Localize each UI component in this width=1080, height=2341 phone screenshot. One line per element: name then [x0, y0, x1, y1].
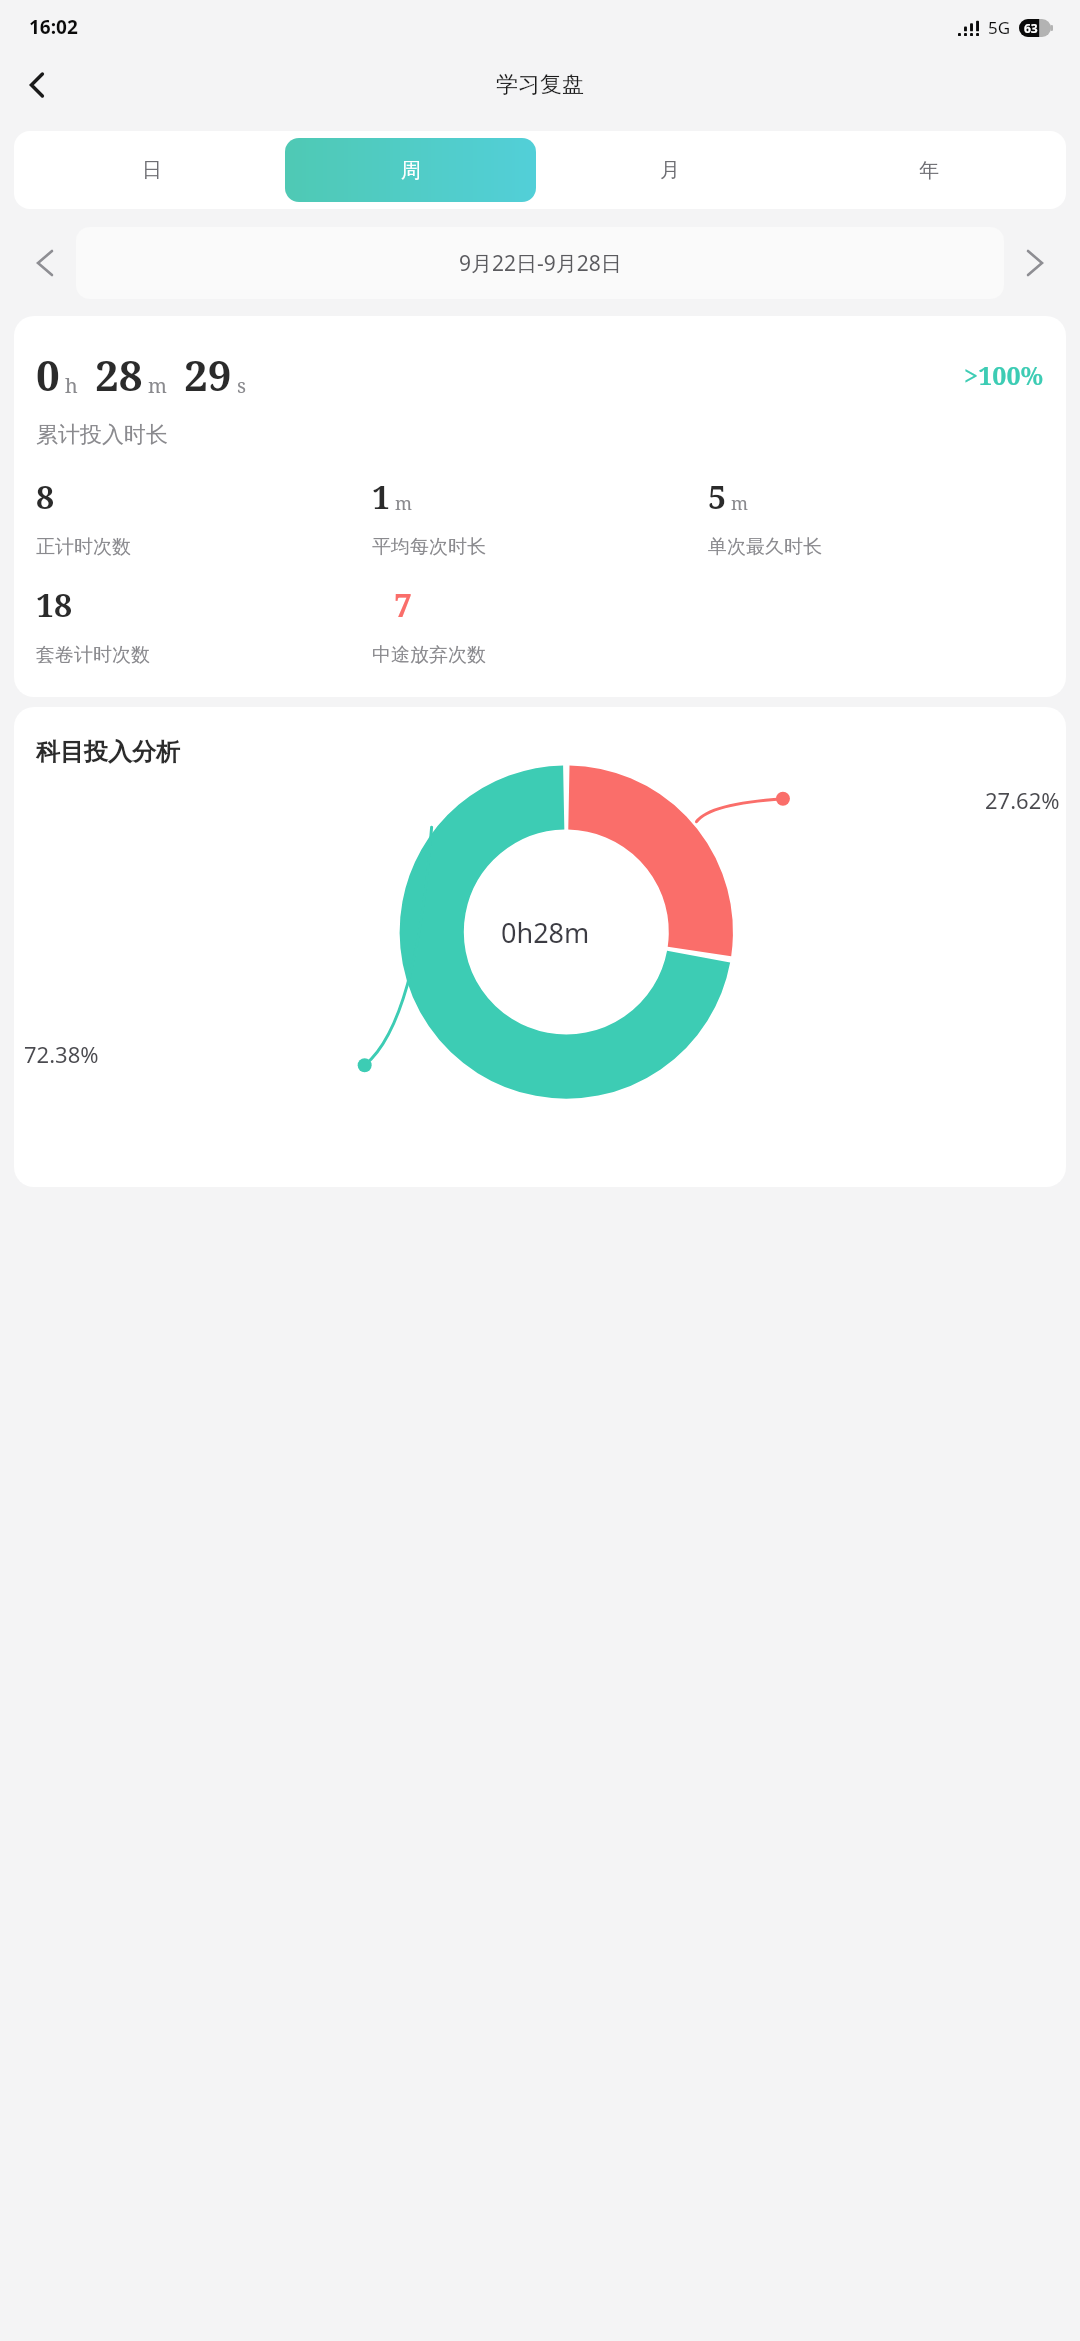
staticText: s [237, 372, 247, 399]
staticText: 月 [660, 158, 680, 183]
button[interactable]: 年 [803, 138, 1054, 202]
staticText: 学习复盘 [496, 71, 584, 99]
staticText: 5 [708, 475, 727, 519]
button[interactable]: Back [12, 59, 64, 111]
staticText: 1 [372, 475, 391, 519]
staticText: h [65, 372, 78, 399]
staticText: 7 [394, 583, 413, 627]
staticText: m [395, 491, 413, 516]
staticText: 单次最久时长 [708, 535, 822, 559]
staticText: 29 [184, 346, 232, 403]
button[interactable]: Next week [1004, 232, 1066, 294]
staticText: 8 [36, 475, 55, 519]
staticText: 18 [36, 583, 73, 627]
staticText: 中途放弃次数 [372, 643, 486, 667]
button[interactable]: 月 [544, 138, 795, 202]
staticText: 16:02 [29, 14, 78, 40]
staticText: 年 [919, 158, 939, 183]
staticText: 累计投入时长 [36, 421, 168, 449]
staticText: 周 [401, 158, 421, 183]
staticText: m [731, 491, 749, 516]
staticText: 科目投入分析 [36, 737, 180, 767]
staticText: 27.62% [985, 785, 1060, 815]
staticText: 正计时次数 [36, 535, 131, 559]
staticText: 63 [1024, 20, 1038, 36]
staticText: 72.38% [24, 1039, 99, 1069]
staticText: 套卷计时次数 [36, 643, 150, 667]
button[interactable]: 日 [26, 138, 277, 202]
staticText: 0h28m [501, 914, 590, 951]
staticText: 5G [988, 16, 1011, 39]
button[interactable]: 9月22日-9月28日 [76, 227, 1004, 299]
staticText: 日 [142, 158, 162, 183]
button[interactable]: 周 [285, 138, 536, 202]
button[interactable]: Previous week [14, 232, 76, 294]
staticText: m [148, 372, 167, 399]
staticText: 9月22日-9月28日 [459, 249, 622, 278]
staticText: >100% [964, 358, 1044, 392]
staticText: 0 [36, 346, 60, 403]
staticText: 28 [95, 346, 143, 403]
staticText: 平均每次时长 [372, 535, 486, 559]
